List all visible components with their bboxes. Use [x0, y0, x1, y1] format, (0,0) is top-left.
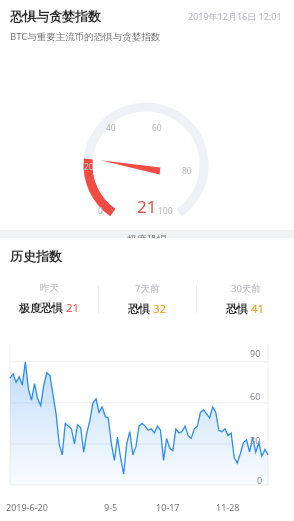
staticText: 历史指数: [10, 248, 62, 264]
button[interactable]: 30天前: [197, 282, 294, 317]
staticText: BTC与重要主流币的恐惧与贪婪指数: [10, 30, 161, 43]
staticText: 恐惧与贪婪指数: [10, 8, 101, 24]
staticText: 恐惧: [226, 302, 248, 316]
staticText: 32: [153, 301, 167, 317]
staticText: 2019年12月16日 12:01: [188, 10, 282, 22]
staticText: 41: [251, 301, 265, 317]
staticText: 0: [98, 205, 103, 217]
staticText: 21: [137, 195, 157, 218]
staticText: 40: [106, 122, 116, 134]
staticText: 60: [250, 390, 261, 402]
staticText: 80: [182, 165, 192, 177]
button[interactable]: 7天前: [99, 282, 196, 317]
staticText: 100: [158, 205, 173, 217]
staticText: 30: [250, 434, 261, 446]
staticText: 昨天: [40, 282, 59, 294]
staticText: 21: [66, 300, 80, 316]
staticText: 60: [152, 122, 162, 134]
staticText: 9-5: [104, 501, 118, 513]
button[interactable]: 昨天: [0, 282, 98, 316]
staticText: 30天前: [231, 282, 261, 295]
staticText: 2019-6-20: [6, 501, 48, 513]
staticText: 极度恐惧: [127, 233, 167, 246]
staticText: 恐惧: [128, 302, 150, 316]
staticText: 20: [84, 161, 94, 173]
staticText: 极度恐惧: [19, 301, 63, 315]
staticText: 10-17: [156, 501, 180, 513]
staticText: 0: [257, 474, 263, 486]
staticText: 11-28: [216, 501, 240, 513]
staticText: 90: [250, 347, 261, 359]
staticText: 7天前: [135, 282, 160, 295]
